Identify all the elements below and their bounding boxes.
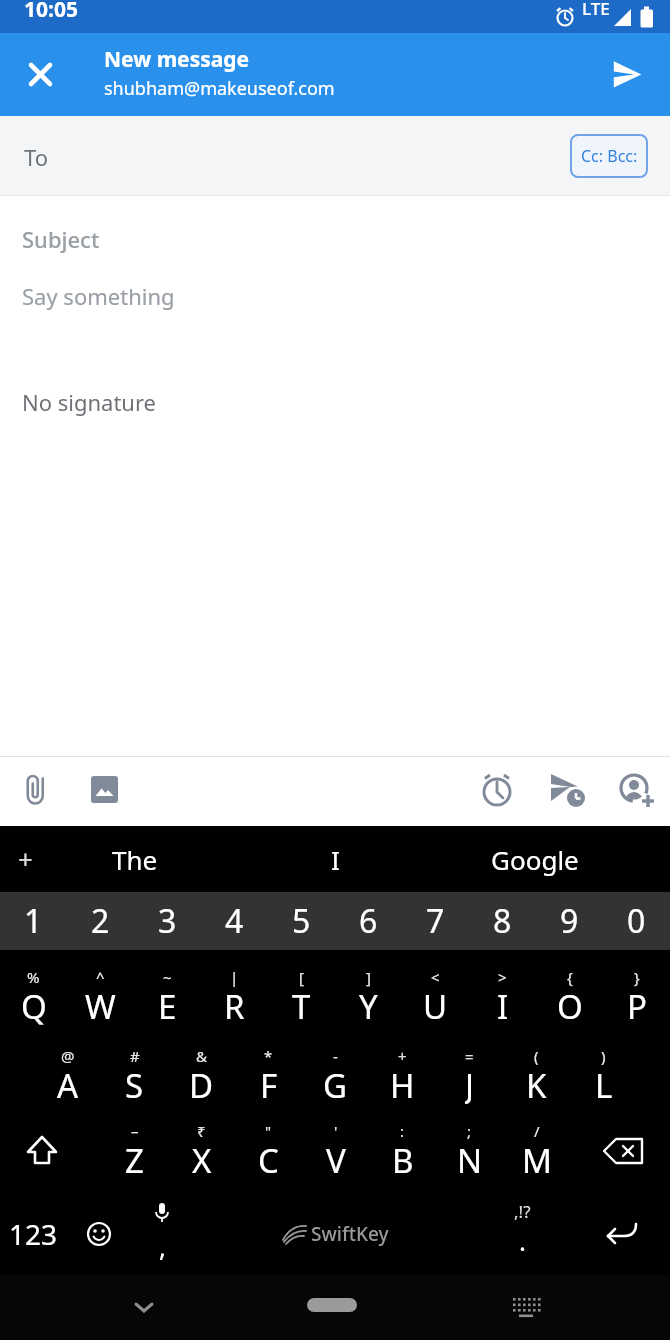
- staticText: M: [522, 1138, 552, 1182]
- button[interactable]: [503, 1031, 570, 1112]
- button[interactable]: The: [45, 826, 225, 892]
- button[interactable]: 0: [603, 892, 670, 950]
- button[interactable]: 2: [67, 892, 134, 950]
- staticText: –: [131, 1121, 139, 1141]
- button[interactable]: [91, 776, 118, 803]
- button[interactable]: [18, 52, 64, 98]
- button[interactable]: X: [168, 1138, 235, 1182]
- button[interactable]: [268, 950, 335, 1031]
- staticText: I: [497, 984, 509, 1028]
- button[interactable]: [307, 1298, 357, 1312]
- button[interactable]: [536, 950, 603, 1031]
- staticText: %: [27, 967, 40, 987]
- button[interactable]: [101, 1031, 168, 1112]
- button[interactable]: 1: [0, 892, 67, 950]
- button[interactable]: [124, 1289, 164, 1325]
- staticText: X: [192, 1138, 212, 1182]
- staticText: 7: [426, 899, 445, 943]
- button[interactable]: V: [302, 1138, 369, 1182]
- staticText: E: [158, 984, 177, 1028]
- button[interactable]: [617, 771, 659, 813]
- button[interactable]: 8: [469, 892, 536, 950]
- button[interactable]: [67, 950, 134, 1031]
- staticText: Z: [125, 1138, 144, 1182]
- button[interactable]: 6: [335, 892, 402, 950]
- button[interactable]: [134, 950, 201, 1031]
- staticText: O: [557, 984, 583, 1028]
- button[interactable]: [10, 1134, 74, 1174]
- staticText: Say something: [22, 281, 175, 311]
- button[interactable]: [168, 1031, 235, 1112]
- button[interactable]: C: [235, 1138, 302, 1182]
- button[interactable]: [550, 773, 590, 813]
- staticText: ": [265, 1121, 272, 1141]
- staticText: B: [392, 1138, 414, 1182]
- button[interactable]: 123: [0, 1193, 67, 1275]
- button[interactable]: SwiftKey: [200, 1193, 470, 1275]
- staticText: ,: [159, 1229, 166, 1263]
- staticText: 6: [359, 899, 378, 943]
- button[interactable]: [608, 57, 658, 107]
- staticText: #: [130, 1046, 140, 1066]
- button[interactable]: [596, 1138, 656, 1178]
- staticText: ~: [163, 967, 172, 987]
- staticText: :: [400, 1121, 405, 1141]
- staticText: 5: [292, 899, 311, 943]
- staticText: LTE: [582, 0, 610, 20]
- staticText: *: [264, 1046, 273, 1066]
- staticText: &: [196, 1046, 207, 1066]
- button[interactable]: [335, 950, 402, 1031]
- button[interactable]: 9: [536, 892, 603, 950]
- button[interactable]: [75, 1193, 123, 1275]
- staticText: ]: [366, 967, 371, 987]
- button[interactable]: [0, 950, 67, 1031]
- staticText: J: [465, 1063, 475, 1107]
- button[interactable]: M: [503, 1138, 570, 1182]
- button[interactable]: [586, 1193, 656, 1275]
- staticText: W: [85, 984, 116, 1028]
- button[interactable]: [469, 950, 536, 1031]
- staticText: @: [61, 1046, 75, 1066]
- staticText: 8: [493, 899, 512, 943]
- button[interactable]: 4: [201, 892, 268, 950]
- staticText: T: [292, 984, 311, 1028]
- staticText: >: [498, 967, 507, 987]
- staticText: +: [18, 841, 33, 876]
- button[interactable]: [235, 1031, 302, 1112]
- button[interactable]: 3: [134, 892, 201, 950]
- button[interactable]: [478, 771, 518, 811]
- button[interactable]: [436, 1031, 503, 1112]
- button[interactable]: [302, 1031, 369, 1112]
- button[interactable]: B: [369, 1138, 436, 1182]
- staticText: -: [333, 1046, 338, 1066]
- button[interactable]: [506, 1289, 546, 1325]
- staticText: Cc: Bcc:: [581, 145, 638, 167]
- staticText: ;: [467, 1121, 472, 1141]
- button[interactable]: I: [245, 826, 425, 892]
- button[interactable]: 5: [268, 892, 335, 950]
- staticText: 10:05: [24, 0, 78, 24]
- button[interactable]: [19, 771, 59, 811]
- button[interactable]: N: [436, 1138, 503, 1182]
- staticText: /: [534, 1121, 540, 1141]
- button[interactable]: Cc: Bcc:: [570, 134, 648, 178]
- staticText: 2: [91, 899, 110, 943]
- staticText: 1: [24, 899, 43, 943]
- staticText: ,!?: [514, 1200, 531, 1223]
- button[interactable]: [402, 950, 469, 1031]
- staticText: (: [534, 1046, 539, 1066]
- button[interactable]: [570, 1031, 637, 1112]
- staticText: ^: [96, 967, 105, 987]
- button[interactable]: [201, 950, 268, 1031]
- button[interactable]: ,!?: [488, 1193, 555, 1275]
- button[interactable]: Z: [101, 1138, 168, 1182]
- button[interactable]: [603, 950, 670, 1031]
- button[interactable]: [369, 1031, 436, 1112]
- button[interactable]: [34, 1031, 101, 1112]
- staticText: Y: [359, 984, 378, 1028]
- staticText: 123: [9, 1215, 58, 1253]
- button[interactable]: 7: [402, 892, 469, 950]
- button[interactable]: ,: [140, 1193, 184, 1275]
- staticText: Subject: [22, 224, 100, 254]
- button[interactable]: Google: [445, 826, 625, 892]
